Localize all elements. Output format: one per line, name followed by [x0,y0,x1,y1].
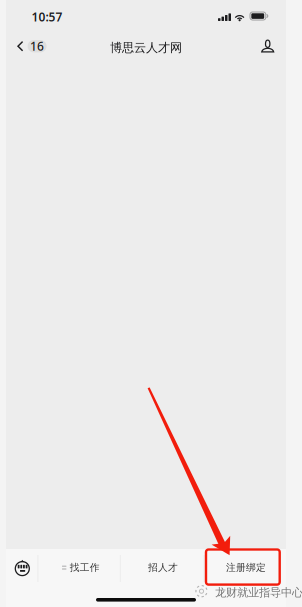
button[interactable]: Mini programs [11,555,34,580]
staticText: 10:57 [31,9,62,25]
button[interactable]: 注册绑定 [216,554,276,581]
button[interactable]: 找工作 [54,554,108,581]
staticText: 招人才 [148,561,178,574]
button[interactable]: 招人才 [138,554,188,581]
staticText: 龙财就业指导中心 [215,585,302,600]
button[interactable]: Account [257,35,278,57]
staticText: 注册绑定 [226,561,266,574]
staticText: 博思云人才网 [110,40,182,55]
button[interactable]: 16 [15,37,49,55]
staticText: 找工作 [70,561,100,574]
staticText: 16 [30,38,44,54]
